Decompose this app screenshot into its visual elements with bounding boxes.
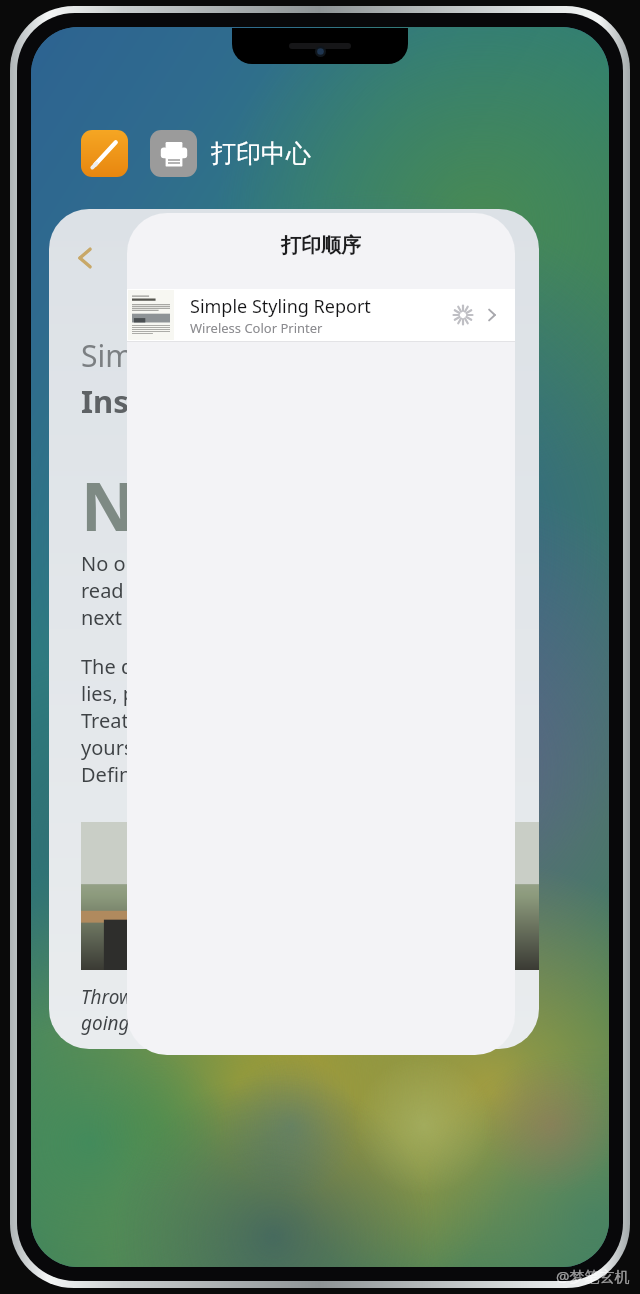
other: Loading bbox=[453, 305, 473, 325]
staticText: lies, pe bbox=[81, 680, 147, 707]
staticText: The de bbox=[81, 653, 145, 680]
button[interactable]: Simple Styling Report bbox=[127, 289, 515, 341]
button[interactable]: Back bbox=[49, 209, 539, 1049]
staticText: Insights bbox=[81, 380, 207, 422]
staticText: N bbox=[81, 460, 135, 550]
staticText: Simple Styling bbox=[81, 335, 280, 376]
staticText: Definit bbox=[81, 761, 144, 788]
staticText: next to bbox=[81, 604, 147, 631]
button[interactable]: Print Center bbox=[150, 130, 197, 177]
button[interactable]: Pages bbox=[81, 130, 128, 177]
staticText: Simple Styling Report bbox=[190, 294, 371, 319]
staticText: Throw bbox=[81, 984, 138, 1010]
staticText: going o bbox=[81, 1010, 146, 1036]
staticText: 打印中心 bbox=[211, 138, 311, 169]
staticText: Wireless Color Printer bbox=[190, 319, 323, 337]
staticText: No one bbox=[81, 550, 155, 577]
staticText: Treat t bbox=[81, 707, 142, 734]
button[interactable]: Back bbox=[69, 241, 103, 275]
staticText: 打印顺序 bbox=[127, 233, 515, 258]
staticText: read m bbox=[81, 577, 148, 604]
staticText: @梦笔玄机 bbox=[556, 1266, 630, 1286]
staticText: yourse bbox=[81, 734, 145, 761]
